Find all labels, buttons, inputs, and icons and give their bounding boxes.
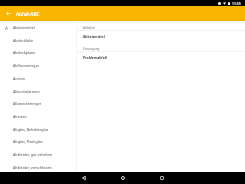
button[interactable]: Home (117, 172, 129, 184)
staticText: Abdeckfolie (13, 38, 34, 43)
staticText: Abfallart (83, 26, 96, 30)
button[interactable]: Altkleider, gut erhalten (0, 148, 76, 161)
button[interactable]: Back (78, 172, 90, 184)
staticText: Abfall-ABC (16, 11, 40, 17)
staticText: Abdeckplane (13, 50, 36, 55)
button[interactable]: Recents (156, 172, 168, 184)
staticText: Abflussreiniger (13, 63, 40, 68)
button[interactable]: A (0, 21, 76, 34)
staticText: Entsorgung (83, 47, 100, 51)
button[interactable]: Abdeckplane (0, 46, 76, 59)
button[interactable]: Alteisen (0, 110, 76, 123)
button[interactable]: Abflussreiniger (0, 59, 76, 72)
button[interactable]: Akkumulatoren (0, 85, 76, 98)
staticText: Abbeizmittel (13, 25, 35, 30)
button[interactable]: Altglas, Behälterglas (0, 123, 76, 136)
staticText: Abbeizmittel (83, 34, 105, 39)
staticText: Allzweckreiniger (13, 101, 42, 106)
button[interactable]: Altkleider, verschlissen (0, 161, 76, 174)
button[interactable]: Allzweckreiniger (0, 97, 76, 110)
staticText: Altkleider, verschlissen (13, 165, 52, 170)
button[interactable]: Back (4, 9, 13, 18)
staticText: 11:55 (232, 1, 241, 6)
button[interactable]: Aceton (0, 72, 76, 85)
staticText: Problemabfall (83, 55, 107, 60)
staticText: Altglas, Behälterglas (13, 127, 49, 132)
button[interactable]: Abdeckfolie (0, 34, 76, 47)
staticText: A (5, 25, 8, 31)
staticText: Altkleider, gut erhalten (13, 152, 53, 157)
staticText: Akkumulatoren (13, 89, 40, 94)
staticText: Aceton (13, 76, 26, 81)
staticText: Alteisen (13, 114, 27, 119)
staticText: Altglas, Flachglas (13, 139, 43, 144)
button[interactable]: Altglas, Flachglas (0, 135, 76, 148)
